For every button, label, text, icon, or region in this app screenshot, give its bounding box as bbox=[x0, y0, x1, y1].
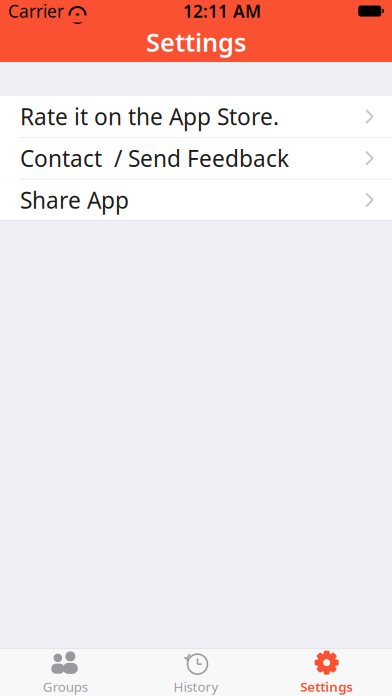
button[interactable]: Rate it on the App Store. bbox=[0, 96, 392, 138]
staticText: Contact / Send Feedback bbox=[20, 143, 289, 173]
button[interactable]: Groups bbox=[0, 648, 131, 696]
button[interactable]: Settings bbox=[261, 648, 392, 696]
staticText: Rate it on the App Store. bbox=[20, 101, 279, 131]
staticText: Share App bbox=[20, 185, 129, 215]
staticText: Groups bbox=[43, 678, 88, 695]
staticText: 12:11 AM bbox=[183, 0, 261, 22]
button[interactable]: Share App bbox=[0, 179, 392, 220]
staticText: Settings bbox=[146, 25, 246, 59]
staticText: Carrier bbox=[8, 0, 64, 22]
staticText: Settings bbox=[300, 678, 353, 695]
staticText: History bbox=[173, 678, 218, 695]
button[interactable]: Contact / Send Feedback bbox=[0, 138, 392, 179]
button[interactable]: History bbox=[131, 648, 261, 696]
